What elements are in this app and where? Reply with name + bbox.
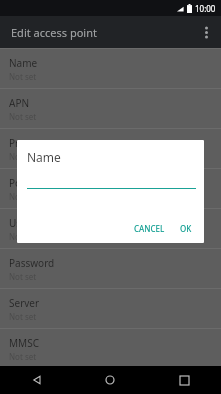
staticText: Not set	[9, 191, 37, 202]
staticText: MMSC	[9, 336, 39, 350]
button[interactable]: Name	[0, 49, 221, 88]
staticText: Not set	[9, 311, 37, 322]
button[interactable]: APN	[0, 89, 221, 128]
staticText: APN	[9, 96, 30, 110]
staticText: Not set	[9, 351, 37, 362]
button[interactable]: CANCEL	[130, 220, 169, 237]
staticText: Server	[9, 296, 40, 310]
staticText: CANCEL	[134, 223, 165, 234]
staticText: Proxy	[9, 136, 36, 150]
button[interactable]: MMSC	[0, 329, 221, 368]
button[interactable]: Port	[0, 169, 221, 208]
staticText: Username	[9, 216, 58, 230]
staticText: OK	[180, 223, 192, 234]
button[interactable]: Recent apps	[147, 366, 221, 394]
staticText: Not set	[9, 151, 37, 162]
button[interactable]: Proxy	[0, 129, 221, 168]
button[interactable]: Back	[0, 366, 73, 394]
button[interactable]: Home	[73, 366, 147, 394]
button[interactable]: Password	[0, 249, 221, 288]
button[interactable]: Server	[0, 289, 221, 328]
button[interactable]: Username	[0, 209, 221, 248]
button[interactable]: More options	[191, 17, 221, 47]
staticText: Not set	[9, 111, 37, 122]
staticText: Not set	[9, 271, 37, 282]
staticText: Not set	[9, 71, 37, 82]
staticText: Name	[9, 56, 38, 70]
staticText: Edit access point	[11, 25, 97, 40]
staticText: 10:00	[195, 3, 216, 14]
button[interactable]: OK	[176, 220, 196, 237]
staticText: Port	[9, 176, 29, 190]
staticText: Name	[27, 149, 61, 165]
staticText: Not set	[9, 231, 37, 242]
staticText: Password	[9, 256, 55, 270]
